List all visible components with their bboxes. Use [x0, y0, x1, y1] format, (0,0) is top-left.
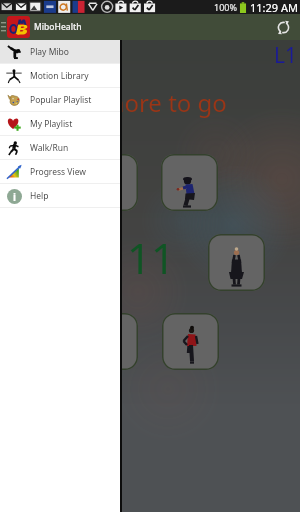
staticText: 100%: [214, 1, 237, 13]
staticText: My Playlist: [30, 118, 73, 130]
button[interactable]: Exercise 0: [81, 154, 138, 211]
button[interactable]: Play Mibo: [0, 40, 120, 63]
staticText: MiboHealth: [34, 21, 82, 33]
button[interactable]: i: [0, 184, 120, 207]
button[interactable]: Exercise 1: [161, 154, 218, 211]
staticText: Help: [30, 190, 49, 202]
staticText: L1: [274, 41, 298, 70]
button[interactable]: Popular Playlist: [0, 88, 120, 111]
staticText: Walk/Run: [30, 142, 69, 154]
staticText: Progress View: [30, 166, 86, 178]
staticText: 11:29 AM: [250, 0, 298, 14]
button[interactable]: Walk/Run: [0, 136, 120, 159]
staticText: 11: [127, 229, 176, 286]
button[interactable]: My Playlist: [0, 112, 120, 135]
button[interactable]: Motion Library: [0, 64, 120, 87]
button[interactable]: Progress View: [0, 160, 120, 183]
staticText: i: [13, 190, 16, 204]
staticText: 2 more to go: [82, 86, 227, 119]
button[interactable]: Exercise 2: [208, 234, 265, 291]
button[interactable]: Exercise 4: [162, 313, 219, 370]
staticText: Play Mibo: [30, 46, 69, 58]
button[interactable]: Refresh: [272, 16, 294, 38]
staticText: Motion Library: [30, 70, 89, 82]
button[interactable]: Exercise 3: [81, 313, 138, 370]
staticText: Popular Playlist: [30, 94, 92, 106]
